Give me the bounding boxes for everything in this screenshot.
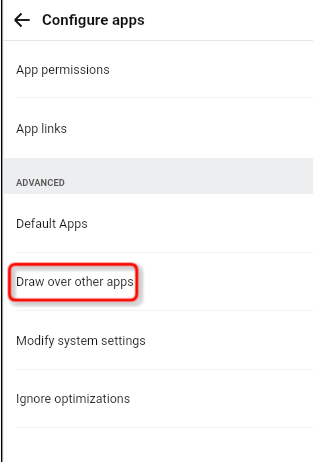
staticText: Default Apps (16, 216, 88, 231)
staticText: App links (16, 121, 68, 136)
button[interactable]: Modify system settings (0, 311, 313, 369)
button[interactable]: Default Apps (0, 194, 313, 252)
button[interactable]: Draw over other apps (0, 253, 313, 310)
staticText: Modify system settings (16, 333, 146, 348)
staticText: ADVANCED (16, 177, 65, 188)
staticText: Draw over other apps (16, 274, 134, 289)
button[interactable]: App permissions (0, 41, 313, 97)
staticText: Configure apps (42, 11, 145, 29)
button[interactable]: App links (0, 98, 313, 158)
button[interactable]: Back (0, 0, 40, 40)
button[interactable]: Ignore optimizations (0, 370, 313, 427)
staticText: Ignore optimizations (16, 391, 131, 406)
staticText: App permissions (16, 62, 110, 77)
